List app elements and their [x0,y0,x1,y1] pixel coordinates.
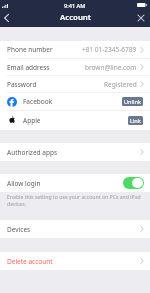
staticText: Allow login [7,179,41,188]
button[interactable]: Password [0,76,150,92]
button[interactable]: Delete account [0,252,150,270]
button[interactable]: Allow login toggle [123,177,144,189]
staticText: Devices [7,225,31,234]
staticText: 9:41 AM [64,2,86,10]
staticText: Apple [23,116,41,125]
staticText: +81 01-2345-6789 [82,45,137,54]
staticText: brown@line.com [85,63,137,72]
staticText: Unlink [124,98,141,106]
staticText: Registered [104,80,137,89]
staticText: Email address [7,63,50,72]
staticText: Authorized apps [7,148,57,157]
button[interactable]: Facebook [0,93,150,110]
button[interactable]: Allow login [0,174,150,192]
button[interactable]: Email address [0,59,150,75]
staticText: Password [7,80,37,89]
button[interactable]: Link [128,116,143,125]
button[interactable]: Unlink [122,97,143,106]
button[interactable]: Devices [0,220,150,238]
staticText: Link [130,117,141,125]
button[interactable]: Phone number [0,41,150,58]
staticText: Account [60,12,91,23]
staticText: Delete account [7,257,53,266]
staticText: Enable this setting to use your account … [7,193,149,207]
staticText: Facebook [23,97,53,106]
button[interactable]: Authorized apps [0,143,150,161]
staticText: Phone number [7,45,53,54]
button[interactable]: Close [135,10,147,26]
button[interactable]: Back [0,10,13,26]
button[interactable]: Apple [0,111,150,130]
